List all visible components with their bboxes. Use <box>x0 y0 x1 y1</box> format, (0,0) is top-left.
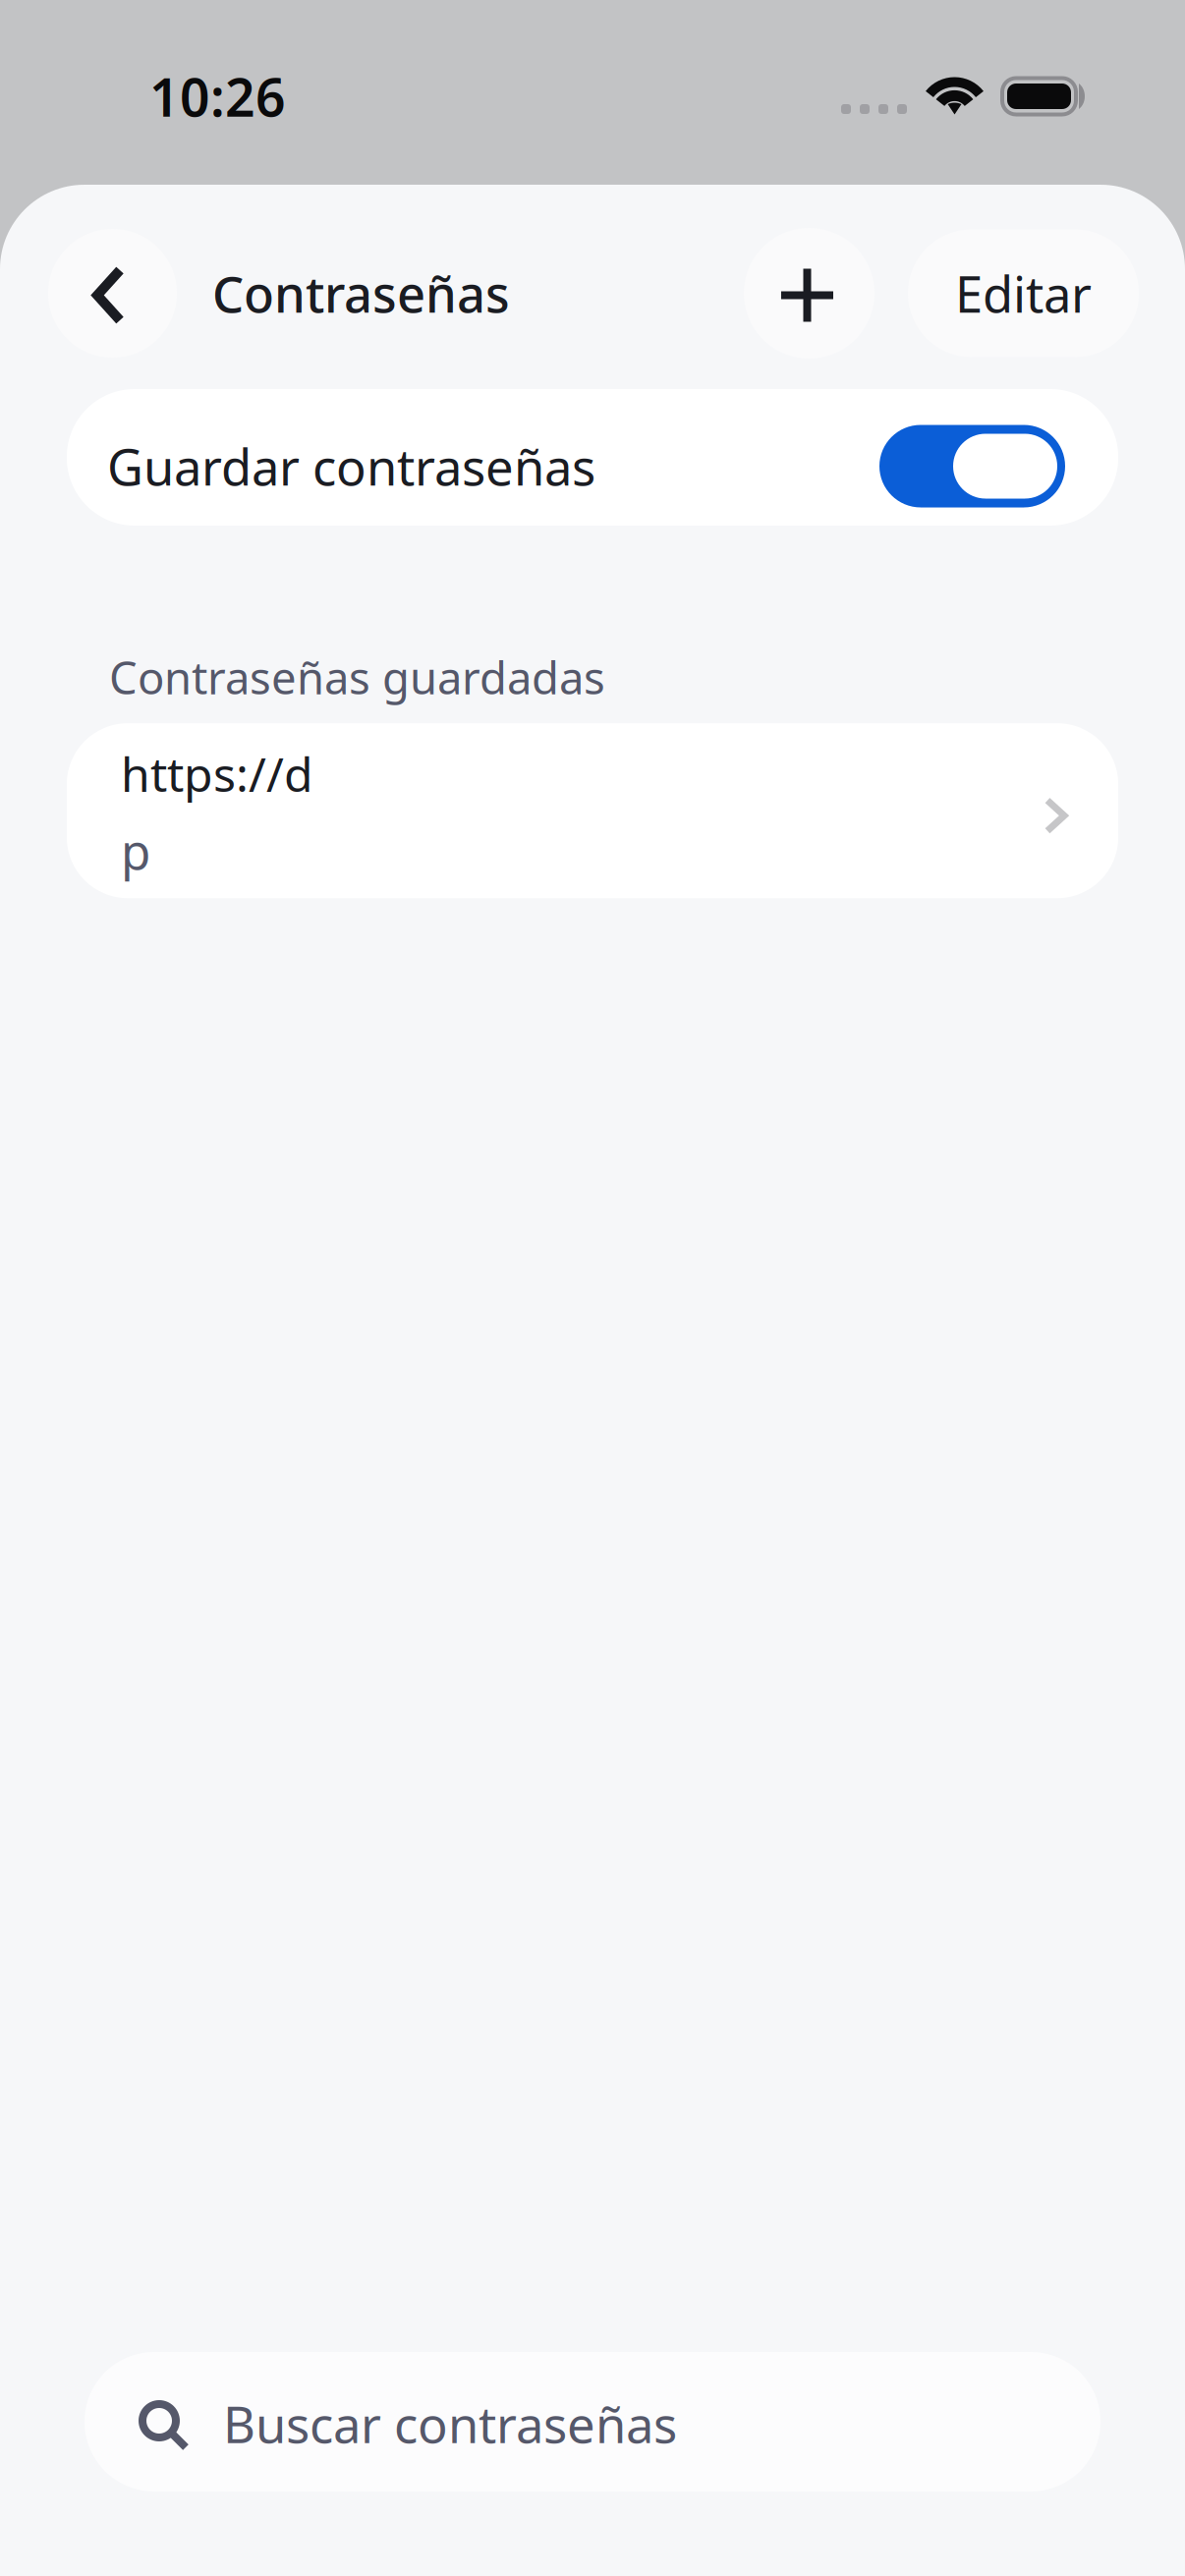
staticText: Buscar contraseñas <box>223 2391 677 2457</box>
button[interactable]: Atrás <box>48 229 177 358</box>
staticText: p <box>121 819 150 883</box>
staticText: Guardar contraseñas <box>107 433 595 499</box>
staticText: 10:26 <box>149 62 286 131</box>
button[interactable]: Editar <box>908 229 1139 357</box>
button[interactable]: Buscar contraseñas <box>85 2352 1100 2492</box>
button[interactable]: Añadir contraseña <box>744 228 875 359</box>
button[interactable]: https://d <box>67 723 1118 898</box>
button[interactable]: Guardar contraseñas <box>67 389 1118 526</box>
staticText: Contraseñas guardadas <box>109 647 605 707</box>
staticText: Contraseñas <box>212 260 510 326</box>
staticText: Editar <box>955 260 1092 326</box>
staticText: https://d <box>121 742 313 805</box>
